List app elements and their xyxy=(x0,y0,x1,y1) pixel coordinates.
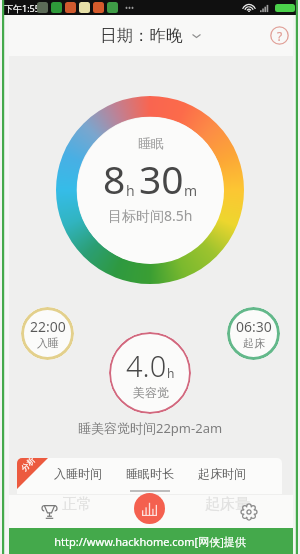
staticText: 美容觉 xyxy=(133,385,169,400)
staticText: 入睡 xyxy=(37,336,59,350)
staticText: 睡眠时长 xyxy=(126,466,174,481)
staticText: 睡眠 xyxy=(138,135,164,151)
staticText: 日期：昨晚 xyxy=(100,25,183,46)
staticText: 入睡时间 xyxy=(54,466,102,481)
button[interactable]: Help xyxy=(270,26,289,45)
staticText: 下午1:55 xyxy=(4,2,40,14)
button[interactable]: Settings xyxy=(218,495,280,528)
staticText: 起床 xyxy=(243,336,265,350)
button[interactable]: Achievements xyxy=(18,495,80,528)
staticText: 起床量 xyxy=(205,495,250,514)
staticText: 06:30 xyxy=(236,317,272,336)
staticText: 4.0 xyxy=(126,346,167,385)
button[interactable]: 4.0 xyxy=(109,332,191,414)
staticText: 30 xyxy=(139,152,184,205)
staticText: ? xyxy=(277,28,283,44)
staticText: http://www.hackhome.com[网侠]提供 xyxy=(54,534,246,549)
staticText: m xyxy=(184,181,198,200)
staticText: h xyxy=(167,365,175,381)
staticText: 正常 xyxy=(62,495,92,514)
staticText: 目标时间8.5h xyxy=(108,206,193,225)
button[interactable]: 06:30 xyxy=(227,307,280,360)
button[interactable]: 22:00 xyxy=(21,307,74,360)
button[interactable]: Statistics xyxy=(134,493,165,524)
staticText: 睡美容觉时间22pm-2am xyxy=(78,419,223,437)
button[interactable]: 日期：昨晚 xyxy=(96,21,205,50)
staticText: 起床时间 xyxy=(198,466,246,481)
button[interactable]: 入睡时间 xyxy=(52,462,104,484)
staticText: ••• xyxy=(125,2,135,13)
staticText: 22:00 xyxy=(30,317,66,336)
button[interactable]: 睡眠时长 xyxy=(124,462,176,484)
button[interactable]: 起床时间 xyxy=(196,462,248,484)
staticText: 分析 xyxy=(19,458,37,473)
staticText: h xyxy=(126,181,135,200)
staticText: 8 xyxy=(103,152,126,205)
